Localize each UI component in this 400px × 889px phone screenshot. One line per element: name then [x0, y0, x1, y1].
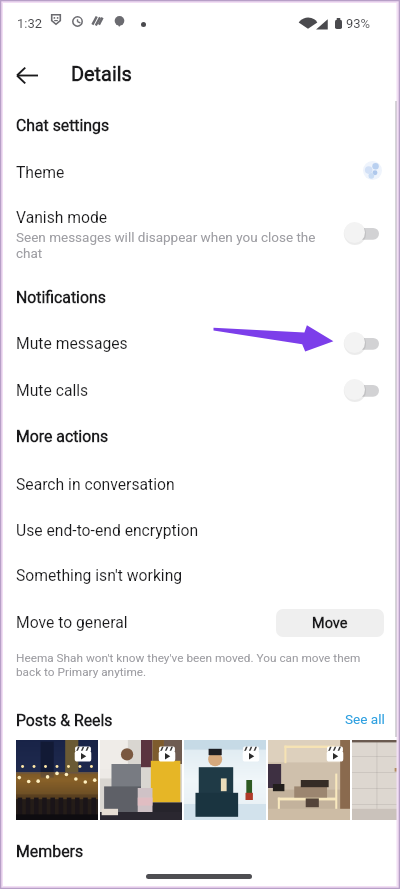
button[interactable] [0, 200, 400, 262]
staticText: 1:32 [17, 16, 43, 31]
staticText: Move to general [16, 613, 128, 631]
staticText: Something isn't working [16, 566, 183, 584]
staticText: Move [312, 615, 348, 632]
button[interactable]: Move [276, 609, 384, 637]
button[interactable] [0, 326, 400, 364]
staticText: Posts & Reels [16, 711, 113, 730]
button[interactable]: Reel [16, 740, 98, 820]
button[interactable]: Back [7, 55, 47, 95]
button[interactable]: Reel [100, 740, 182, 820]
staticText: Details [71, 63, 132, 86]
staticText: See all [345, 711, 385, 727]
staticText: Use end-to-end encryption [16, 521, 199, 539]
staticText: 93% [346, 16, 371, 31]
button[interactable]: Reel [268, 740, 350, 820]
button[interactable] [0, 372, 400, 410]
staticText: Members [16, 842, 84, 861]
button[interactable]: Reel [184, 740, 266, 820]
staticText: Vanish mode [16, 208, 108, 226]
staticText: Search in conversation [16, 475, 175, 493]
button[interactable]: Toggle [337, 215, 385, 249]
staticText: Mute messages [16, 334, 128, 352]
staticText: Seen messages will disappear when you cl… [16, 229, 324, 261]
button[interactable]: Toggle [337, 372, 385, 406]
button[interactable]: Reel [352, 740, 400, 820]
staticText: Notifications [16, 288, 106, 307]
button[interactable]: See all [336, 706, 394, 732]
staticText: Heema Shah won't know they've been moved… [16, 651, 366, 678]
staticText: Mute calls [16, 381, 89, 399]
staticText: Chat settings [16, 116, 110, 135]
staticText: More actions [16, 427, 109, 446]
button[interactable] [0, 154, 400, 192]
button[interactable]: Theme [358, 156, 386, 184]
staticText: Theme [16, 163, 65, 181]
button[interactable] [0, 604, 400, 642]
button[interactable] [0, 558, 400, 596]
button[interactable]: Toggle [337, 325, 385, 359]
button[interactable] [0, 512, 400, 550]
button[interactable] [0, 466, 400, 504]
